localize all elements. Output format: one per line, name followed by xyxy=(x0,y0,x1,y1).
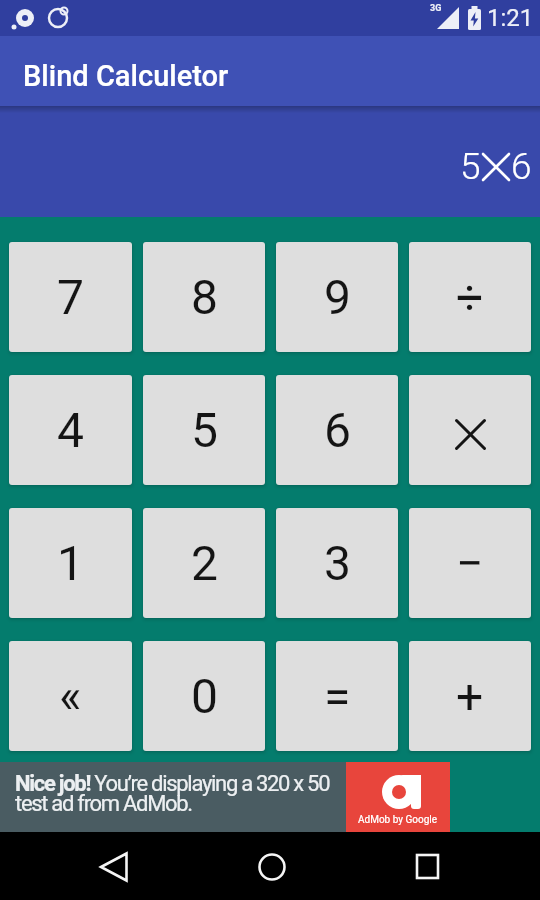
staticText: 0 xyxy=(191,668,218,724)
staticText: Blind Calculetor xyxy=(23,59,229,93)
staticText: test ad from AdMob. xyxy=(15,791,192,817)
staticText: 6 xyxy=(511,145,532,188)
button[interactable]: Nice job! You’re displaying a 320 x 50 xyxy=(0,762,450,832)
staticText: AdMob by Google xyxy=(358,814,438,826)
staticText: 3 xyxy=(324,535,351,591)
button[interactable]: 6 xyxy=(276,375,398,485)
button[interactable]: 3 xyxy=(276,508,398,618)
button[interactable]: 7 xyxy=(9,242,132,352)
button[interactable]: 0 xyxy=(143,641,265,751)
staticText: 2 xyxy=(191,535,218,591)
staticText: 1 xyxy=(57,535,84,591)
staticText: 4 xyxy=(57,402,84,458)
button[interactable] xyxy=(409,375,531,485)
button[interactable]: − xyxy=(409,508,531,618)
staticText: + xyxy=(456,668,484,724)
button[interactable]: = xyxy=(276,641,398,751)
staticText: = xyxy=(324,668,351,724)
button[interactable]: 2 xyxy=(143,508,265,618)
button[interactable]: 8 xyxy=(143,242,265,352)
staticText: 8 xyxy=(191,269,218,325)
button[interactable]: + xyxy=(409,641,531,751)
staticText: 1:21 xyxy=(487,4,534,32)
button[interactable]: 5 xyxy=(143,375,265,485)
staticText: 5 xyxy=(191,402,218,458)
button[interactable]: « xyxy=(9,641,132,751)
staticText: ÷ xyxy=(456,269,484,325)
button[interactable]: 1 xyxy=(9,508,132,618)
staticText: − xyxy=(456,535,484,591)
staticText: 5 xyxy=(460,145,481,188)
button[interactable]: 4 xyxy=(9,375,132,485)
staticText: 3G xyxy=(430,3,442,14)
staticText: 7 xyxy=(57,269,84,325)
staticText: 6 xyxy=(324,402,351,458)
staticText: « xyxy=(59,668,82,724)
staticText: 9 xyxy=(324,269,351,325)
staticText: Nice job! You’re displaying a 320 x 50 xyxy=(15,771,330,797)
button[interactable]: 9 xyxy=(276,242,398,352)
button[interactable]: ÷ xyxy=(409,242,531,352)
